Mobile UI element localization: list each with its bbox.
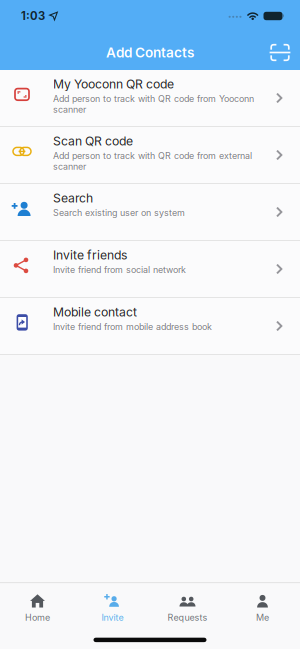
button[interactable]: Requests: [150, 592, 225, 623]
button[interactable]: Invite: [75, 592, 150, 623]
button[interactable]: Mobile contact: [0, 298, 300, 354]
staticText: Home: [25, 612, 50, 623]
staticText: Invite friend from social network: [53, 264, 186, 275]
staticText: Scan QR code: [53, 134, 133, 148]
button[interactable]: Scan QR code: [0, 127, 300, 183]
button[interactable]: Invite friends: [0, 241, 300, 297]
button[interactable]: My Yooconn QR code: [0, 70, 300, 126]
staticText: Me: [256, 612, 269, 623]
button[interactable]: Search: [0, 184, 300, 240]
staticText: Add person to track with QR code from Yo…: [53, 93, 254, 115]
staticText: Search existing user on system: [53, 207, 185, 218]
staticText: 1:03: [21, 9, 45, 23]
staticText: Invite friends: [53, 248, 127, 262]
staticText: Search: [53, 191, 93, 205]
button[interactable]: Home: [0, 592, 75, 623]
staticText: Invite friend from mobile address book: [53, 321, 212, 332]
staticText: Add person to track with QR code from ex…: [53, 150, 252, 172]
staticText: Invite: [101, 612, 123, 623]
button[interactable]: Me: [225, 592, 300, 623]
button[interactable]: [270, 43, 300, 61]
staticText: My Yooconn QR code: [53, 77, 174, 91]
staticText: Requests: [167, 612, 207, 623]
staticText: Add Contacts: [106, 44, 194, 61]
staticText: Mobile contact: [53, 305, 137, 319]
